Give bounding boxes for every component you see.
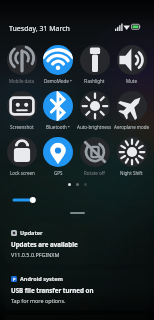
staticText: DemoMode • xyxy=(44,78,72,84)
staticText: GPS xyxy=(54,170,63,176)
staticText: Mobile data xyxy=(9,78,35,84)
staticText: Flashlight xyxy=(84,78,105,84)
button[interactable]: Auto-brightness xyxy=(76,91,113,130)
staticText: Screenshot xyxy=(10,124,34,130)
button[interactable]: P xyxy=(4,269,150,310)
button[interactable]: Lock screen xyxy=(4,137,40,176)
staticText: Aeroplane mode xyxy=(114,124,150,130)
button[interactable]: Rotate off xyxy=(76,137,113,176)
button[interactable]: Aeroplane mode xyxy=(113,91,150,130)
staticText: Updates are available xyxy=(11,240,78,248)
button[interactable]: Mobile data xyxy=(4,45,40,84)
staticText: Auto-brightness xyxy=(77,124,112,130)
staticText: V11.0.5.0.PFGINXM xyxy=(11,251,60,258)
staticText: Android system xyxy=(20,275,63,282)
staticText: USB file transfer turned on xyxy=(11,286,94,294)
button[interactable]: DemoMode • xyxy=(40,45,76,84)
button[interactable]: Flashlight xyxy=(76,45,113,84)
staticText: P xyxy=(13,277,16,282)
staticText: Lock screen xyxy=(10,170,35,176)
button[interactable]: Night Shift xyxy=(113,137,150,176)
staticText: Tuesday, 31 March xyxy=(9,24,70,34)
button[interactable]: GPS xyxy=(40,137,76,176)
button[interactable]: Screenshot xyxy=(4,91,40,130)
staticText: Bluetooth • xyxy=(46,124,70,130)
staticText: Tap for more options. xyxy=(11,297,66,304)
staticText: Mute xyxy=(126,78,138,84)
staticText: Updater xyxy=(20,229,43,236)
button[interactable]: Brightness xyxy=(0,195,154,205)
button[interactable]: Mute xyxy=(113,45,150,84)
button[interactable]: Bluetooth • xyxy=(40,91,76,130)
staticText: Night Shift xyxy=(120,170,143,176)
button[interactable]: Updater xyxy=(4,223,150,264)
staticText: Rotate off xyxy=(84,170,105,176)
